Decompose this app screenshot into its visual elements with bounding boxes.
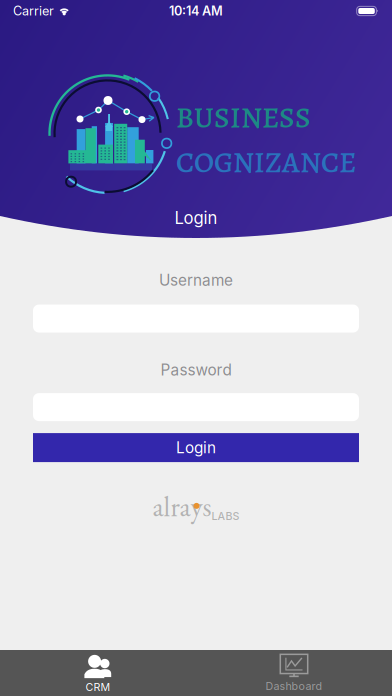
staticText: Dashboard <box>265 679 322 692</box>
staticText: alra <box>152 488 190 525</box>
staticText: Login <box>174 208 217 228</box>
staticText: Login <box>176 438 216 457</box>
staticText: COGNIZANCE <box>176 142 356 182</box>
button[interactable]: Login <box>33 433 359 462</box>
button[interactable]: Dashboard <box>196 650 392 696</box>
staticText: CRM <box>85 680 110 693</box>
staticText: Username <box>159 271 233 290</box>
staticText: 10:14 AM <box>169 3 223 19</box>
staticText: ys <box>190 488 211 525</box>
staticText: Password <box>160 361 231 379</box>
staticText: BUSINESS <box>176 98 311 137</box>
button[interactable]: CRM <box>0 650 196 696</box>
staticText: Carrier <box>13 3 54 19</box>
staticText: LABS <box>211 510 239 523</box>
